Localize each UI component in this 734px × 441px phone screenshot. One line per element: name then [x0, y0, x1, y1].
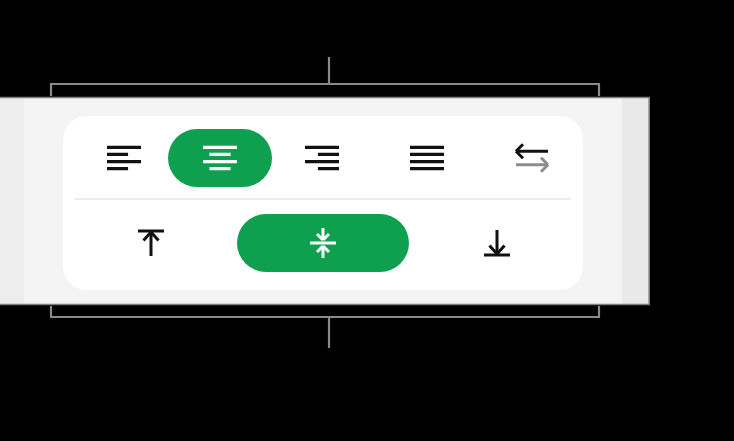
button[interactable]: Justify	[391, 129, 463, 187]
button[interactable]: Align middle	[237, 214, 409, 272]
button[interactable]: Align right	[286, 129, 358, 187]
button[interactable]: Text direction	[496, 129, 568, 187]
button[interactable]: Align top	[115, 214, 187, 272]
button[interactable]: Align bottom	[461, 214, 533, 272]
button[interactable]: Align centre	[168, 129, 272, 187]
button[interactable]: Align left	[88, 129, 160, 187]
